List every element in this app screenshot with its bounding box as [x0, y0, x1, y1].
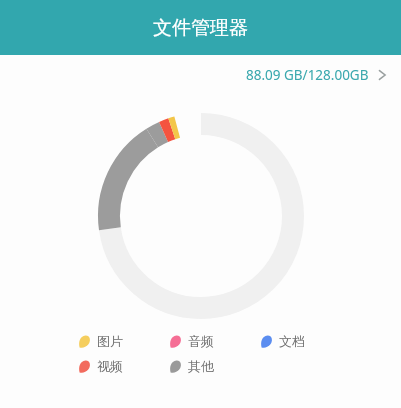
button[interactable]: 图片 [78, 333, 169, 349]
staticText: 音频 [188, 333, 214, 349]
staticText: 文件管理器 [153, 16, 248, 40]
staticText: 文档 [279, 333, 305, 349]
other: Storage details [375, 68, 389, 82]
button[interactable]: 视频 [78, 358, 169, 374]
staticText: 其他 [188, 358, 214, 374]
button[interactable]: 文档 [260, 333, 351, 349]
button[interactable]: 其他 [169, 358, 260, 374]
staticText: 88.09 GB/128.00GB [246, 66, 369, 84]
staticText: 图片 [97, 333, 123, 349]
button[interactable]: 音频 [169, 333, 260, 349]
staticText: 视频 [97, 358, 123, 374]
button[interactable]: 88.09 GB/128.00GB [0, 55, 401, 95]
